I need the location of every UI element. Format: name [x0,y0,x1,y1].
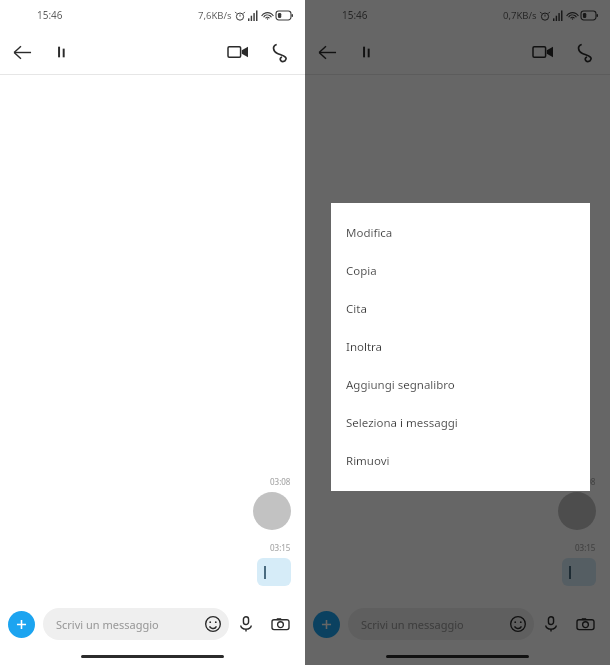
button[interactable] [257,558,291,586]
staticText: Copia [346,263,377,279]
staticText: 15:46 [37,8,63,22]
button[interactable]: Video call [522,31,564,73]
staticText: Scrivi un messaggio [56,617,197,632]
button[interactable]: Attach [313,611,340,638]
staticText: 03:08 [270,476,291,487]
staticText: Seleziona i messaggi [346,415,458,431]
staticText: 7,6KB/s [198,9,232,22]
staticText: 03:15 [270,542,291,553]
button[interactable]: Aggiungi segnalibro [331,366,590,404]
staticText: Inoltra [346,339,383,355]
button[interactable]: Camera [568,607,602,641]
staticText: Rimuovi [346,453,390,469]
button[interactable] [558,492,596,530]
button[interactable]: Modifica [331,214,590,252]
button[interactable]: Scrivi un messaggio [348,608,534,640]
button[interactable]: Voice message [534,607,568,641]
button[interactable]: Back [305,30,349,74]
staticText: 15:46 [342,8,368,22]
button[interactable]: Copia [331,252,590,290]
staticText: 03:08 [575,476,596,487]
button[interactable]: Camera [263,607,297,641]
staticText: Cita [346,301,367,317]
button[interactable]: Voice call [564,31,606,73]
button[interactable]: Contact [44,34,80,70]
button[interactable]: Seleziona i messaggi [331,404,590,442]
staticText: Aggiungi segnalibro [346,377,455,393]
staticText: Scrivi un messaggio [361,617,502,632]
staticText: 03:15 [575,542,596,553]
button[interactable]: Rimuovi [331,442,590,480]
button[interactable] [253,492,291,530]
button[interactable]: Video call [217,31,259,73]
button[interactable]: Scrivi un messaggio [43,608,229,640]
button[interactable]: Voice call [259,31,301,73]
button[interactable]: Back [0,30,44,74]
button[interactable]: Emoji [502,608,534,640]
button[interactable] [562,558,596,586]
button[interactable]: Inoltra [331,328,590,366]
staticText: 0,7KB/s [503,9,537,22]
button[interactable]: Cita [331,290,590,328]
button[interactable]: Contact [349,34,385,70]
button[interactable]: Emoji [197,608,229,640]
button[interactable]: Voice message [229,607,263,641]
button[interactable]: Attach [8,611,35,638]
staticText: Modifica [346,225,393,241]
